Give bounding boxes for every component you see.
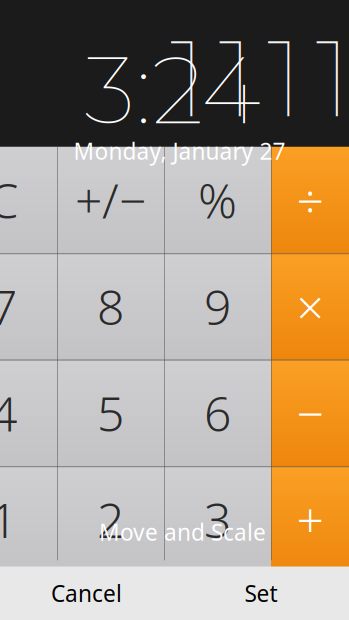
staticText: 4 [0,381,17,445]
staticText: +/− [75,168,146,232]
staticText: 3:24 [84,33,261,147]
staticText: 3 [204,488,231,551]
staticText: C [0,168,18,232]
staticText: 7 [0,275,17,338]
staticText: × [296,275,323,338]
staticText: ÷ [296,168,323,232]
staticText: − [296,381,323,445]
button[interactable]: Set [173,566,349,620]
staticText: + [296,488,323,551]
staticText: % [198,168,237,232]
button[interactable]: Cancel [0,566,173,620]
staticText: 8 [97,275,124,338]
staticText: Move and Scale [99,517,266,547]
staticText: 5 [97,381,124,445]
staticText: 9 [204,275,231,338]
staticText: 1 [0,488,17,551]
staticText: Set [244,578,277,608]
staticText: Cancel [51,578,122,608]
staticText: 1111 [170,13,349,143]
staticText: 6 [204,381,231,445]
staticText: Monday, January 27 [73,136,285,166]
staticText: 2 [97,488,124,551]
